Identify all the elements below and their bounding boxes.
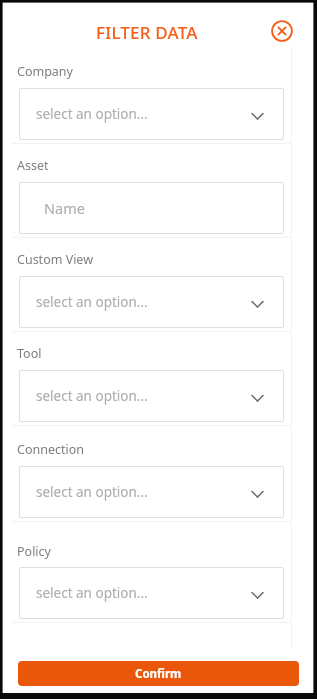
staticText: select an option...	[36, 483, 148, 501]
button[interactable]: Name	[19, 182, 284, 234]
staticText: Company	[17, 63, 73, 80]
button[interactable]: select an option...	[19, 466, 284, 518]
staticText: select an option...	[36, 584, 148, 602]
button[interactable]	[271, 20, 293, 42]
staticText: select an option...	[36, 387, 148, 405]
staticText: FILTER DATA	[96, 21, 198, 44]
button[interactable]: select an option...	[19, 276, 284, 328]
staticText: Tool	[17, 345, 42, 362]
button[interactable]: select an option...	[19, 88, 284, 140]
staticText: Custom View	[17, 251, 93, 268]
staticText: Confirm	[135, 666, 182, 682]
button[interactable]: select an option...	[19, 567, 284, 619]
staticText: Asset	[17, 157, 49, 174]
staticText: Policy	[17, 543, 51, 560]
button[interactable]: Confirm	[18, 661, 299, 686]
button[interactable]: select an option...	[19, 370, 284, 422]
staticText: Connection	[17, 441, 84, 458]
staticText: select an option...	[36, 105, 148, 123]
staticText: select an option...	[36, 293, 148, 311]
staticText: Name	[44, 198, 85, 218]
